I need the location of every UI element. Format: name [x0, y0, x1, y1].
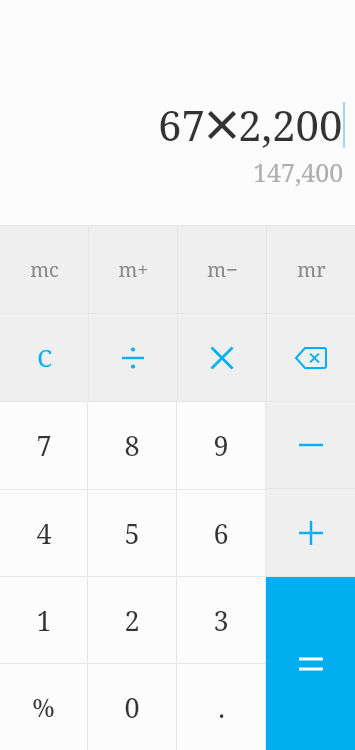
- staticText: 4: [36, 515, 52, 552]
- button[interactable]: Subtract: [266, 402, 355, 488]
- button[interactable]: 5: [88, 490, 176, 576]
- staticText: 3: [213, 602, 229, 639]
- staticText: 1: [36, 602, 52, 639]
- button[interactable]: Add: [266, 489, 355, 576]
- staticText: 2,200: [238, 96, 343, 153]
- button[interactable]: 9: [177, 402, 265, 489]
- staticText: mr: [297, 256, 326, 283]
- button[interactable]: C: [0, 314, 88, 401]
- staticText: 6: [213, 515, 229, 552]
- button[interactable]: mc: [0, 226, 88, 313]
- staticText: mc: [30, 256, 59, 283]
- staticText: .: [218, 689, 225, 726]
- staticText: 67: [158, 96, 205, 153]
- button[interactable]: 1: [0, 577, 87, 663]
- staticText: 9: [213, 427, 229, 464]
- button[interactable]: Equals: [266, 577, 355, 750]
- staticText: 2: [124, 602, 140, 639]
- button[interactable]: Divide: [89, 314, 177, 401]
- button[interactable]: .: [177, 664, 265, 750]
- staticText: 7: [36, 427, 52, 464]
- staticText: %: [32, 690, 55, 724]
- button[interactable]: m−: [178, 226, 266, 313]
- staticText: C: [37, 341, 52, 374]
- staticText: 5: [124, 515, 140, 552]
- button[interactable]: 8: [88, 402, 176, 489]
- button[interactable]: Multiply: [178, 314, 266, 401]
- button[interactable]: Backspace: [267, 314, 355, 401]
- button[interactable]: mr: [267, 226, 355, 313]
- staticText: 0: [124, 689, 140, 726]
- staticText: 147,400: [253, 155, 344, 189]
- button[interactable]: 0: [88, 664, 176, 750]
- button[interactable]: 7: [0, 402, 87, 489]
- button[interactable]: m+: [89, 226, 177, 313]
- staticText: 8: [124, 427, 140, 464]
- button[interactable]: 4: [0, 490, 87, 576]
- button[interactable]: 6: [177, 490, 265, 576]
- staticText: m−: [207, 256, 238, 283]
- button[interactable]: 3: [177, 577, 265, 663]
- button[interactable]: 2: [88, 577, 176, 663]
- staticText: m+: [118, 256, 149, 283]
- button[interactable]: %: [0, 664, 87, 750]
